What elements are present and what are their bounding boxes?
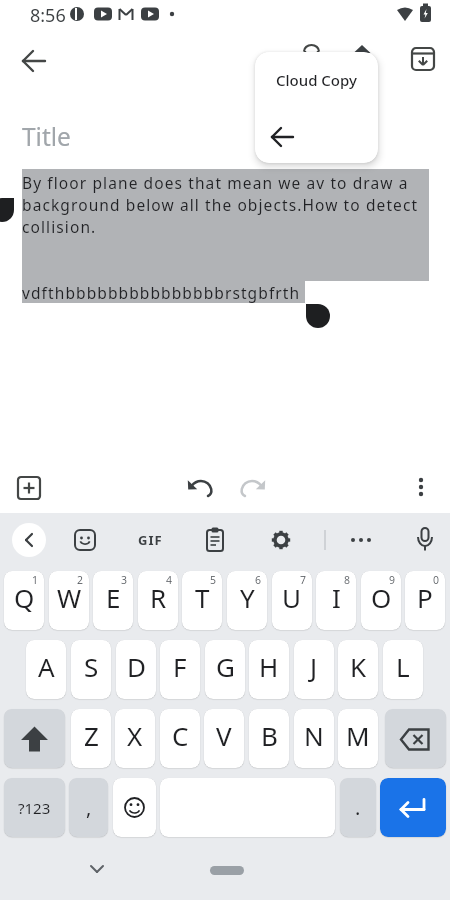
button[interactable]: S [71,640,111,699]
staticText: Z [84,718,99,753]
button[interactable] [266,525,296,555]
button[interactable] [262,117,302,157]
button[interactable]: Y [227,571,267,630]
button[interactable]: M [338,709,378,768]
staticText: E [106,580,121,615]
button[interactable]: , [69,778,108,837]
button[interactable]: . [340,778,376,837]
button[interactable] [200,525,230,555]
staticText: 8:56 [30,3,66,28]
staticText: S [84,649,99,684]
button[interactable]: GIF [130,525,170,555]
button[interactable] [380,778,446,837]
button[interactable]: V [204,709,244,768]
staticText: L [396,649,410,684]
button[interactable]: U [272,571,312,630]
button[interactable]: Z [71,709,111,768]
staticText: K [350,649,367,684]
button[interactable]: H [249,640,289,699]
staticText: Q [14,580,35,615]
button[interactable] [70,525,100,555]
staticText: 8 [344,573,351,587]
staticText: V [216,718,232,753]
staticText: C [172,718,189,753]
staticText: 9 [389,573,396,587]
button[interactable]: Q [4,571,44,630]
staticText: G [216,649,235,684]
button[interactable]: D [116,640,156,699]
staticText: ?123 [18,798,51,818]
button[interactable]: L [383,640,423,699]
staticText: Title [22,120,71,153]
staticText: 2 [77,573,84,587]
staticText: 1 [32,573,39,587]
button[interactable]: P [405,571,445,630]
button[interactable]: B [249,709,289,768]
button[interactable]: T [182,571,222,630]
staticText: X [127,718,143,753]
button[interactable] [237,472,269,504]
staticText: A [38,649,55,684]
button[interactable]: J [294,640,334,699]
staticText: O [371,580,392,615]
button[interactable]: X [115,709,155,768]
button[interactable] [4,709,65,768]
button[interactable] [184,472,216,504]
staticText: R [150,580,167,615]
staticText: 5 [210,573,217,587]
staticText: background below all the objects.How to … [22,194,419,215]
staticText: 6 [255,573,262,587]
staticText: U [282,580,302,615]
button[interactable] [12,523,46,557]
staticText: I [332,580,341,615]
staticText: M [346,718,370,753]
staticText: 3 [121,573,128,587]
staticText: H [259,649,279,684]
staticText: F [173,649,187,684]
staticText: N [304,718,324,753]
staticText: Cloud Copy [276,70,357,90]
staticText: W [57,580,82,615]
button[interactable]: Cloud Copy [255,62,378,98]
staticText: B [261,718,278,753]
button[interactable]: W [49,571,89,630]
staticText: GIF [138,531,163,549]
staticText: P [417,580,433,615]
staticText: J [310,649,318,684]
button[interactable]: F [160,640,200,699]
staticText: By floor plane does that mean we av to d… [22,172,409,193]
staticText: . [355,794,361,821]
button[interactable]: N [294,709,334,768]
button[interactable]: A [26,640,66,699]
button[interactable] [16,44,50,78]
staticText: D [127,649,146,684]
button[interactable]: I [316,571,356,630]
staticText: collision. [22,216,97,237]
button[interactable] [113,778,156,837]
staticText: 7 [300,573,307,587]
staticText: 0 [433,573,440,587]
button[interactable] [410,524,440,556]
button[interactable]: K [338,640,378,699]
staticText: 4 [166,573,173,587]
staticText: , [86,794,92,821]
button[interactable]: E [93,571,133,630]
button[interactable]: ?123 [4,778,65,837]
button[interactable]: G [205,640,245,699]
button[interactable] [408,44,438,74]
staticText: vdfthbbbbbbbbbbbbbbbrstgbfrth [22,282,301,303]
button[interactable] [14,473,44,503]
button[interactable] [385,709,446,768]
button[interactable]: R [138,571,178,630]
button[interactable]: O [361,571,401,630]
button[interactable] [406,472,436,502]
button[interactable]: C [160,709,200,768]
staticText: Y [240,580,255,615]
staticText: T [195,580,210,615]
